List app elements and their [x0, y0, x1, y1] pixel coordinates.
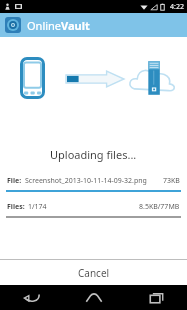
button[interactable]: Home	[63, 285, 125, 310]
staticText: Uploading files...	[50, 147, 137, 162]
staticText: Cancel	[78, 266, 110, 280]
staticText: File:	[7, 176, 22, 186]
staticText: 8.5KB/77MB	[139, 202, 180, 212]
staticText: OnlineVault	[27, 18, 90, 33]
staticText: 73KB	[163, 176, 180, 186]
button[interactable]: Cancel	[0, 260, 187, 285]
staticText: 1/174	[28, 202, 47, 212]
staticText: Screenshot_2013-10-11-14-09-32.png	[25, 176, 147, 186]
staticText: 4:22	[170, 2, 184, 12]
button[interactable]: Recent apps	[125, 285, 187, 310]
button[interactable]: Back	[0, 285, 63, 310]
staticText: Files:	[7, 202, 25, 212]
